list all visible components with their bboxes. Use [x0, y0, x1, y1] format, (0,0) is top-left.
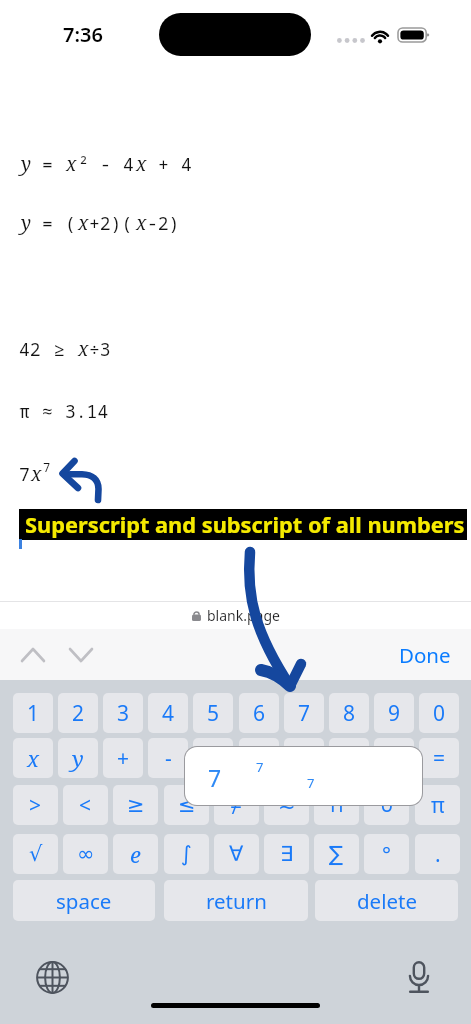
- button[interactable]: ∫: [164, 834, 209, 874]
- button[interactable]: 3: [103, 693, 143, 733]
- button[interactable]: π: [415, 785, 460, 825]
- button[interactable]: (: [374, 738, 414, 778]
- staticText: ∪: [379, 793, 395, 817]
- staticText: 7:36: [63, 21, 103, 48]
- staticText: Done: [399, 641, 451, 669]
- staticText: -: [165, 744, 172, 773]
- button[interactable]: ∑: [314, 834, 359, 874]
- staticText: ∫: [181, 842, 192, 866]
- button[interactable]: ^: [284, 738, 324, 778]
- staticText: ≈: [278, 793, 296, 817]
- button[interactable]: Next field: [59, 634, 103, 676]
- staticText: blank.page: [207, 606, 280, 625]
- staticText: °: [382, 840, 391, 869]
- staticText: 4: [162, 699, 175, 728]
- staticText: -: [100, 152, 111, 177]
- staticText: .: [435, 840, 441, 869]
- button[interactable]: _: [329, 738, 369, 778]
- staticText: _: [344, 744, 354, 773]
- staticText: x: [66, 151, 77, 177]
- staticText: 2: [72, 699, 85, 728]
- staticText: ∀: [229, 842, 244, 866]
- button[interactable]: ≥: [113, 785, 158, 825]
- staticText: y: [21, 151, 32, 177]
- button[interactable]: return: [164, 880, 308, 921]
- staticText: √: [29, 842, 43, 866]
- button[interactable]: Done: [392, 634, 458, 676]
- staticText: 7: [208, 762, 222, 793]
- button[interactable]: ∪: [364, 785, 409, 825]
- staticText: +: [158, 152, 169, 177]
- staticText: ∞: [77, 842, 95, 866]
- button[interactable]: 7: [185, 747, 422, 805]
- staticText: x: [78, 210, 89, 236]
- button[interactable]: ∃: [264, 834, 309, 874]
- staticText: 6: [253, 699, 266, 728]
- button[interactable]: y: [58, 738, 98, 778]
- button[interactable]: 7: [284, 693, 324, 733]
- button[interactable]: ×: [193, 738, 233, 778]
- button[interactable]: 9: [374, 693, 414, 733]
- button[interactable]: <: [63, 785, 108, 825]
- button[interactable]: 1: [13, 693, 53, 733]
- staticText: ≥: [54, 337, 65, 362]
- staticText: 8: [343, 699, 356, 728]
- staticText: >: [29, 791, 42, 820]
- staticText: ≠: [230, 791, 243, 820]
- staticText: x: [78, 336, 89, 362]
- button[interactable]: e: [113, 834, 158, 874]
- staticText: y: [72, 743, 84, 773]
- button[interactable]: ≈: [264, 785, 309, 825]
- staticText: 7: [43, 459, 51, 475]
- button[interactable]: 5: [193, 693, 233, 733]
- button[interactable]: 2: [58, 693, 98, 733]
- staticText: Superscript and subscript of all numbers: [25, 510, 465, 540]
- staticText: ÷3: [89, 337, 111, 362]
- button[interactable]: Change keyboard: [28, 953, 76, 1001]
- staticText: ∩: [329, 793, 345, 817]
- button[interactable]: +: [103, 738, 143, 778]
- staticText: 42: [19, 337, 41, 362]
- staticText: (: [65, 211, 76, 236]
- staticText: ^: [298, 744, 311, 773]
- button[interactable]: >: [13, 785, 58, 825]
- staticText: ∃: [280, 842, 294, 866]
- staticText: (: [391, 744, 398, 773]
- staticText: 7: [19, 462, 30, 487]
- staticText: 3.14: [65, 399, 109, 424]
- button[interactable]: 0: [419, 693, 459, 733]
- button[interactable]: 6: [239, 693, 279, 733]
- button[interactable]: .: [415, 834, 460, 874]
- staticText: 1: [27, 699, 40, 728]
- button[interactable]: -: [148, 738, 188, 778]
- button[interactable]: ∩: [314, 785, 359, 825]
- button[interactable]: Previous field: [11, 634, 55, 676]
- staticText: 7: [256, 758, 264, 776]
- staticText: =: [42, 152, 53, 177]
- staticText: delete: [357, 887, 417, 915]
- button[interactable]: space: [13, 880, 155, 921]
- staticText: π: [431, 791, 445, 820]
- button[interactable]: =: [419, 738, 459, 778]
- button[interactable]: 4: [148, 693, 188, 733]
- button[interactable]: °: [364, 834, 409, 874]
- button[interactable]: ÷: [239, 738, 279, 778]
- button[interactable]: 8: [329, 693, 369, 733]
- button[interactable]: x: [13, 738, 53, 778]
- staticText: e: [130, 839, 141, 869]
- staticText: 4: [181, 152, 192, 177]
- button[interactable]: ≤: [164, 785, 209, 825]
- staticText: y: [21, 210, 32, 236]
- staticText: ≤: [178, 793, 196, 817]
- button[interactable]: ≠: [214, 785, 259, 825]
- button[interactable]: delete: [315, 880, 458, 921]
- button[interactable]: √: [13, 834, 58, 874]
- button[interactable]: Dictation: [395, 953, 443, 1001]
- staticText: x: [31, 461, 42, 487]
- button[interactable]: ∀: [214, 834, 259, 874]
- staticText: <: [79, 791, 92, 820]
- staticText: return: [206, 887, 267, 915]
- button[interactable]: ∞: [63, 834, 108, 874]
- staticText: x: [27, 743, 40, 773]
- staticText: 9: [388, 699, 401, 728]
